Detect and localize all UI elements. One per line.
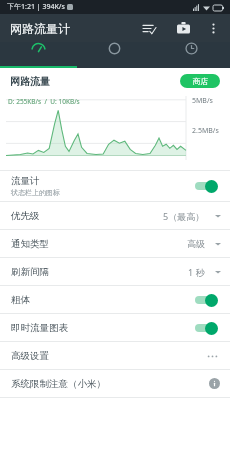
other: Info — [209, 378, 220, 389]
staticText: 商店 — [193, 77, 208, 86]
button[interactable]: Select all — [137, 16, 161, 40]
button[interactable]: Usage — [76, 42, 153, 55]
button[interactable]: Speed — [0, 42, 76, 55]
button[interactable]: Record — [171, 16, 195, 40]
staticText: 5（最高） — [163, 210, 205, 222]
staticText: 高级 — [187, 238, 205, 249]
button[interactable]: 刷新间隔 — [0, 258, 230, 285]
staticText: 高级设置 — [11, 350, 49, 362]
button[interactable]: 系统限制注意（小米） — [0, 370, 230, 397]
staticText: 优先级 — [11, 210, 40, 222]
button[interactable]: 优先级 — [0, 202, 230, 229]
staticText: 1 秒 — [188, 266, 205, 278]
button[interactable]: More options — [201, 16, 225, 40]
staticText: 5MB/s — [192, 96, 213, 106]
staticText: 即时流量图表 — [11, 322, 68, 334]
staticText: 粗体 — [11, 294, 30, 306]
button[interactable]: 流量计 — [0, 171, 230, 201]
staticText: 下午1:21 | 394K/s — [7, 2, 65, 12]
staticText: 状态栏上的图标 — [11, 188, 60, 197]
staticText: 系统限制注意（小米） — [11, 378, 106, 390]
staticText: D: 255KB/s / U: 10KB/s — [8, 97, 80, 106]
staticText: 2.5MB/s — [192, 126, 219, 136]
button[interactable]: 粗体 — [0, 286, 230, 313]
staticText: 通知类型 — [11, 238, 49, 250]
button[interactable]: 高级设置 — [0, 342, 230, 369]
button[interactable]: History — [153, 42, 230, 55]
button[interactable]: 通知类型 — [0, 230, 230, 257]
staticText: 刷新间隔 — [11, 266, 49, 278]
button[interactable]: 即时流量图表 — [0, 314, 230, 341]
staticText: 流量计 — [11, 175, 40, 187]
button[interactable]: 商店 — [180, 74, 220, 88]
staticText: 网路流量计 — [10, 21, 70, 36]
staticText: 网路流量 — [10, 75, 50, 88]
